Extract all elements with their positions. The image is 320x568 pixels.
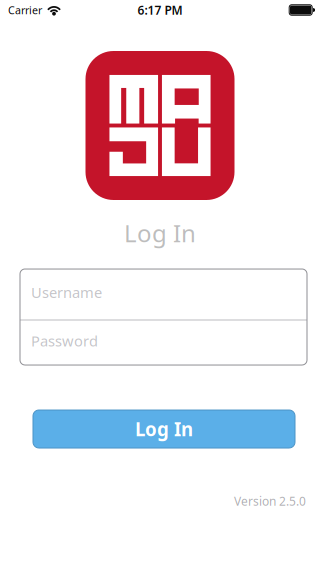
staticText: Username: [31, 282, 102, 302]
staticText: Log In: [135, 417, 193, 441]
staticText: 6:17 PM: [137, 2, 182, 18]
staticText: Carrier: [8, 3, 42, 17]
button[interactable]: Log In: [33, 410, 295, 448]
button[interactable]: Username: [20, 269, 307, 319]
staticText: Log In: [124, 217, 196, 249]
button[interactable]: Password: [20, 320, 307, 365]
staticText: Password: [31, 331, 98, 350]
staticText: Version 2.5.0: [234, 493, 306, 509]
